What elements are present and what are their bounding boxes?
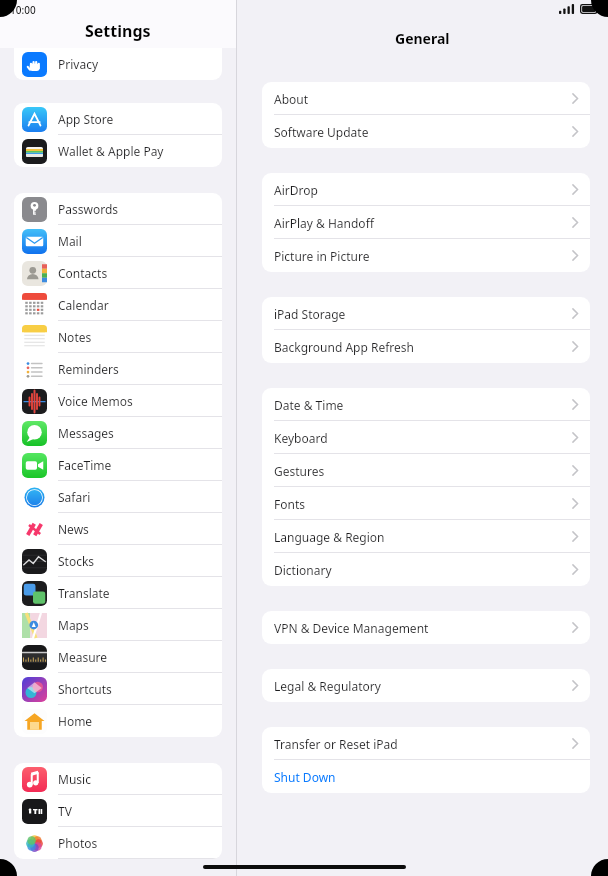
button[interactable]: Gestures <box>262 454 590 487</box>
button[interactable]: AirDrop <box>262 173 590 206</box>
button[interactable]: Notes <box>14 321 222 353</box>
other: Cellular signal <box>559 4 576 14</box>
staticText: Gestures <box>274 463 325 479</box>
button[interactable]: Calendar <box>14 289 222 321</box>
staticText: AirDrop <box>274 182 318 198</box>
button[interactable]: Wallet & Apple Pay <box>14 135 222 167</box>
staticText: Privacy <box>58 56 99 72</box>
button[interactable]: App Store <box>14 103 222 135</box>
staticText: Messages <box>58 425 114 441</box>
staticText: Shut Down <box>274 769 336 785</box>
staticText: Date & Time <box>274 397 344 413</box>
staticText: 10:00 <box>10 3 36 17</box>
staticText: Maps <box>58 617 89 633</box>
button[interactable]: Home <box>14 705 222 737</box>
staticText: Passwords <box>58 201 119 217</box>
staticText: Safari <box>58 489 91 505</box>
button[interactable]: Shortcuts <box>14 673 222 705</box>
staticText: Legal & Regulatory <box>274 678 381 694</box>
button[interactable]: Picture in Picture <box>262 239 590 272</box>
button[interactable]: News <box>14 513 222 545</box>
staticText: Keyboard <box>274 430 328 446</box>
button[interactable]: Keyboard <box>262 421 590 454</box>
button[interactable]: About <box>262 82 590 115</box>
staticText: AirPlay & Handoff <box>274 215 374 231</box>
button[interactable]: Language & Region <box>262 520 590 553</box>
staticText: Home <box>58 713 93 729</box>
button[interactable]: Fonts <box>262 487 590 520</box>
button[interactable]: Mail <box>14 225 222 257</box>
button[interactable]: VPN & Device Management <box>262 611 590 644</box>
staticText: TV <box>58 803 72 819</box>
button[interactable]: Passwords <box>14 193 222 225</box>
staticText: Calendar <box>58 297 109 313</box>
staticText: VPN & Device Management <box>274 620 429 636</box>
button[interactable]: Transfer or Reset iPad <box>262 727 590 760</box>
staticText: Photos <box>58 835 98 851</box>
button[interactable]: Legal & Regulatory <box>262 669 590 702</box>
button[interactable]: Contacts <box>14 257 222 289</box>
staticText: Wallet & Apple Pay <box>58 143 164 159</box>
button[interactable]: Maps <box>14 609 222 641</box>
button[interactable]: Background App Refresh <box>262 330 590 363</box>
button[interactable]: Voice Memos <box>14 385 222 417</box>
button[interactable]: Translate <box>14 577 222 609</box>
staticText: Notes <box>58 329 92 345</box>
staticText: Music <box>58 771 91 787</box>
staticText: Reminders <box>58 361 119 377</box>
staticText: Measure <box>58 649 108 665</box>
button[interactable]: Stocks <box>14 545 222 577</box>
staticText: Translate <box>58 585 110 601</box>
button[interactable]: Safari <box>14 481 222 513</box>
other: Battery <box>580 4 600 14</box>
staticText: Settings <box>85 20 151 42</box>
button[interactable]: Reminders <box>14 353 222 385</box>
staticText: Dictionary <box>274 562 332 578</box>
staticText: Voice Memos <box>58 393 133 409</box>
button[interactable]: AirPlay & Handoff <box>262 206 590 239</box>
staticText: App Store <box>58 111 114 127</box>
staticText: Picture in Picture <box>274 248 370 264</box>
button[interactable]: FaceTime <box>14 449 222 481</box>
button[interactable]: Dictionary <box>262 553 590 586</box>
button[interactable]: Music <box>14 763 222 795</box>
staticText: Transfer or Reset iPad <box>274 736 398 752</box>
staticText: News <box>58 521 89 537</box>
button[interactable]: iPad Storage <box>262 297 590 330</box>
staticText: Mail <box>58 233 82 249</box>
button[interactable]: Software Update <box>262 115 590 148</box>
staticText: Stocks <box>58 553 95 569</box>
staticText: iPad Storage <box>274 306 346 322</box>
staticText: Contacts <box>58 265 108 281</box>
staticText: General <box>395 29 450 48</box>
button[interactable]: Date & Time <box>262 388 590 421</box>
button[interactable]: Shut Down <box>262 760 590 793</box>
button[interactable]: Photos <box>14 827 222 859</box>
staticText: Language & Region <box>274 529 385 545</box>
staticText: FaceTime <box>58 457 112 473</box>
staticText: Software Update <box>274 124 369 140</box>
staticText: Fonts <box>274 496 305 512</box>
staticText: About <box>274 91 309 107</box>
staticText: Background App Refresh <box>274 339 414 355</box>
button[interactable]: Privacy <box>14 48 222 80</box>
button[interactable]: Messages <box>14 417 222 449</box>
button[interactable]: TV <box>14 795 222 827</box>
staticText: Shortcuts <box>58 681 112 697</box>
button[interactable]: Measure <box>14 641 222 673</box>
